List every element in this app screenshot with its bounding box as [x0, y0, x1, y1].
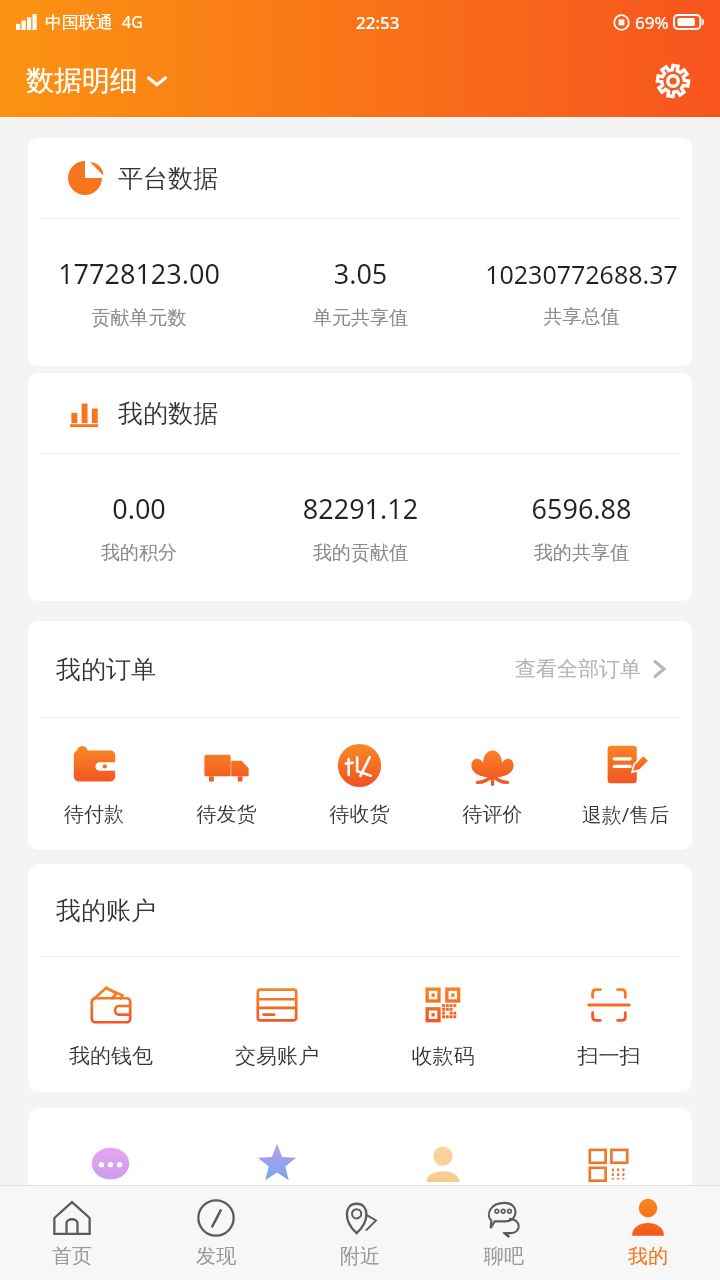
staticText: 查看全部订单 — [515, 656, 641, 682]
staticText: 待发货 — [160, 802, 293, 827]
staticText: 发现 — [144, 1244, 288, 1269]
staticText: 我的积分 — [28, 541, 250, 565]
staticText: 4G — [122, 11, 143, 33]
button[interactable]: 待评价 — [426, 718, 559, 850]
staticText: 单元共享值 — [250, 306, 471, 330]
staticText: 贡献单元数 — [28, 306, 250, 330]
staticText: 我的钱包 — [28, 1043, 194, 1069]
button[interactable]: 数据明细 — [24, 57, 170, 104]
button[interactable]: 待付款 — [28, 718, 160, 850]
staticText: 收款码 — [360, 1043, 526, 1069]
staticText: 0.00 — [28, 490, 250, 527]
button[interactable]: 发现 — [144, 1186, 288, 1280]
staticText: 82291.12 — [250, 490, 471, 527]
button[interactable]: 交易账户 — [194, 957, 360, 1092]
staticText: 扫一扫 — [526, 1043, 692, 1069]
button[interactable]: 退款/售后 — [559, 718, 692, 850]
staticText: 共享总值 — [471, 305, 692, 329]
staticText: 待评价 — [426, 802, 559, 827]
staticText: 我的订单 — [56, 654, 156, 685]
button[interactable]: Settings — [648, 56, 698, 106]
staticText: 3.05 — [250, 255, 471, 292]
button[interactable]: 聊吧 — [432, 1186, 576, 1280]
button[interactable]: 我的钱包 — [28, 957, 194, 1092]
button[interactable]: 我的 — [576, 1186, 720, 1280]
button[interactable]: 附近 — [288, 1186, 432, 1280]
staticText: 10230772688.37 — [471, 257, 692, 291]
staticText: 6596.88 — [471, 490, 692, 527]
staticText: 聊吧 — [432, 1244, 576, 1269]
staticText: 平台数据 — [118, 163, 218, 194]
staticText: 我的数据 — [118, 398, 218, 429]
staticText: 退款/售后 — [559, 801, 692, 828]
staticText: 22:53 — [356, 11, 400, 34]
button[interactable]: 待收货 — [293, 718, 426, 850]
staticText: 附近 — [288, 1244, 432, 1269]
staticText: 我的贡献值 — [250, 541, 471, 565]
staticText: 待付款 — [28, 802, 160, 827]
button[interactable]: 扫一扫 — [526, 957, 692, 1092]
staticText: 待收货 — [293, 802, 426, 827]
staticText: 首页 — [0, 1244, 144, 1269]
staticText: 69% — [635, 11, 669, 34]
button[interactable]: 查看全部订单 — [511, 652, 670, 686]
button[interactable] — [360, 1146, 526, 1185]
staticText: 我的账户 — [56, 895, 156, 926]
staticText: 中国联通 — [45, 12, 113, 33]
button[interactable] — [526, 1146, 692, 1185]
staticText: 交易账户 — [194, 1043, 360, 1069]
button[interactable] — [194, 1146, 360, 1185]
button[interactable]: 收款码 — [360, 957, 526, 1092]
staticText: 我的 — [576, 1244, 720, 1269]
staticText: 17728123.00 — [28, 255, 250, 292]
button[interactable]: 待发货 — [160, 718, 293, 850]
staticText: 数据明细 — [26, 63, 138, 98]
button[interactable]: 首页 — [0, 1186, 144, 1280]
staticText: 我的共享值 — [471, 541, 692, 565]
button[interactable] — [28, 1146, 194, 1185]
